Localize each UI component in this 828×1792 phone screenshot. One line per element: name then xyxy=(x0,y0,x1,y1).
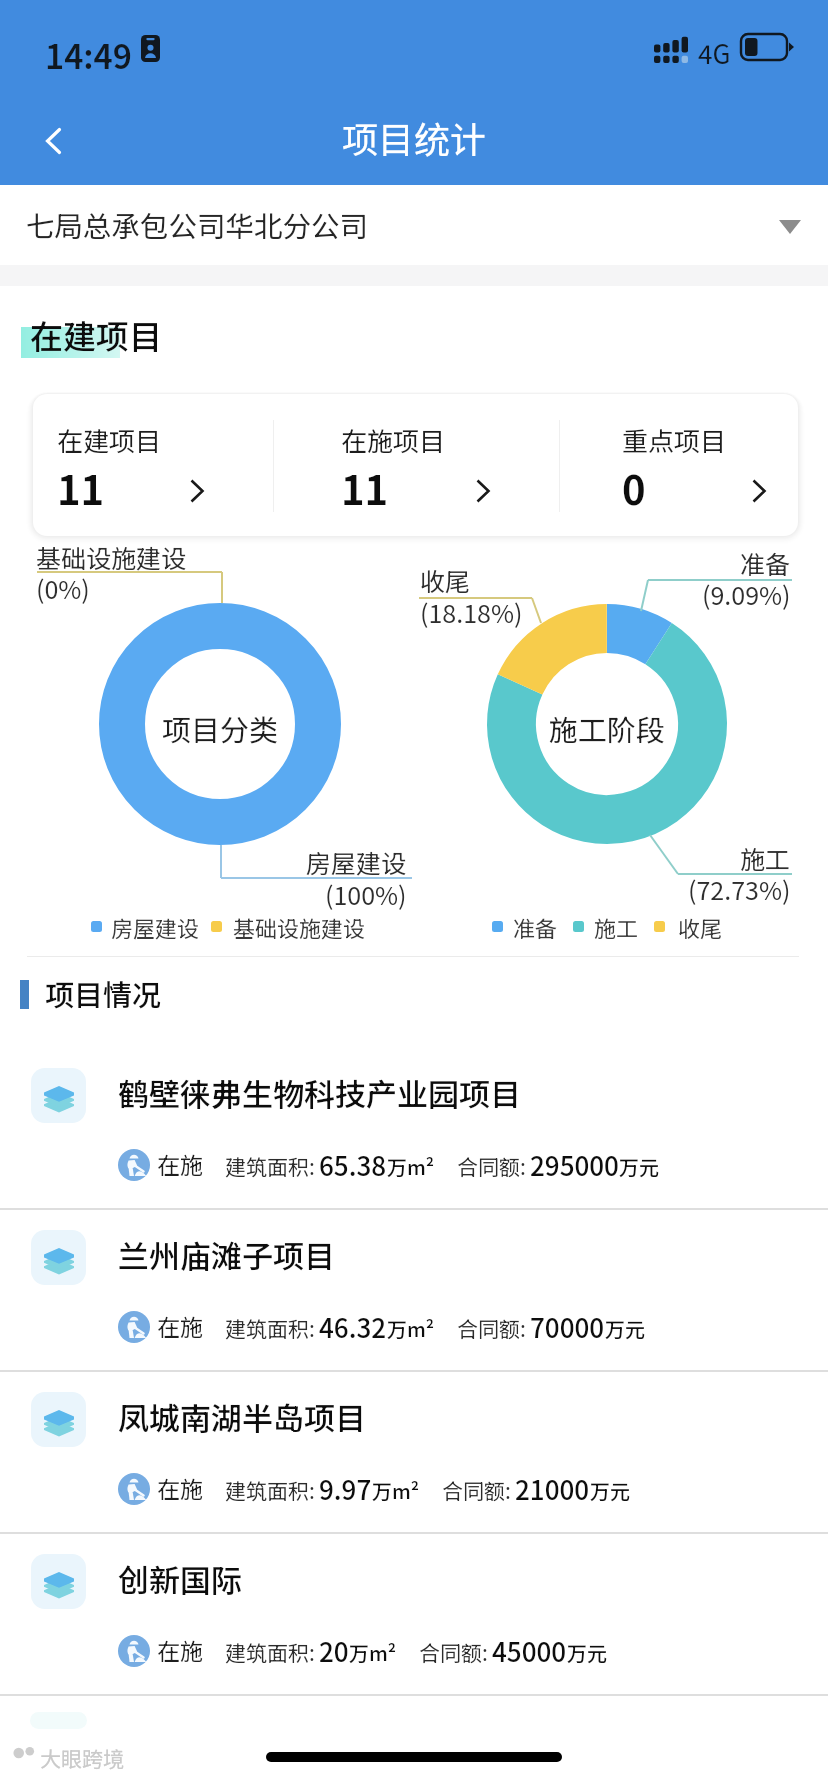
staticText: 14:49 xyxy=(45,31,132,79)
button[interactable]: 在建项目 xyxy=(33,394,273,536)
staticText: 45000 xyxy=(492,1632,567,1670)
staticText: 21000 xyxy=(515,1470,590,1508)
staticText: 合同额: xyxy=(457,1151,526,1181)
staticText: 基础设施建设 xyxy=(233,911,366,943)
staticText: 施工阶段 xyxy=(549,707,666,747)
staticText: 房屋建设 xyxy=(306,844,407,880)
staticText: 295000 xyxy=(530,1146,619,1184)
staticText: 建筑面积: xyxy=(225,1475,315,1505)
button[interactable]: 鹤壁徕弗生物科技产业园项目 xyxy=(0,1048,828,1210)
staticText: 在施 xyxy=(157,1147,203,1180)
button[interactable]: 兰州庙滩子项目 xyxy=(0,1210,828,1372)
staticText: 鹤壁徕弗生物科技产业园项目 xyxy=(118,1070,521,1115)
staticText: 施工 xyxy=(740,840,791,876)
staticText: 4G xyxy=(698,34,731,72)
staticText: (0%) xyxy=(36,570,90,606)
staticText: 准备 xyxy=(740,545,791,581)
staticText: 重点项目 xyxy=(622,421,727,459)
button[interactable]: 创新国际 xyxy=(0,1534,828,1696)
staticText: 七局总承包公司华北分公司 xyxy=(26,204,369,245)
staticText: 在施项目 xyxy=(341,421,446,459)
staticText: 准备 xyxy=(513,911,558,943)
staticText: 房屋建设 xyxy=(111,911,200,943)
staticText: 收尾 xyxy=(420,562,471,598)
staticText: 在建项目 xyxy=(57,421,162,459)
staticText: 大眼跨境 xyxy=(40,1743,124,1773)
staticText: 11 xyxy=(341,459,389,517)
staticText: 万m² xyxy=(387,1152,435,1181)
staticText: 基础设施建设 xyxy=(36,539,187,575)
staticText: 施工 xyxy=(594,911,639,943)
staticText: 46.32 xyxy=(319,1308,387,1346)
staticText: 65.38 xyxy=(319,1146,387,1184)
staticText: 万元 xyxy=(567,1638,607,1667)
staticText: 合同额: xyxy=(457,1313,526,1343)
staticText: 在施 xyxy=(157,1471,203,1504)
button[interactable]: 重点项目 xyxy=(598,394,798,536)
staticText: (18.18%) xyxy=(420,594,523,630)
staticText: 项目统计 xyxy=(342,111,487,163)
staticText: 建筑面积: xyxy=(225,1637,315,1667)
staticText: (100%) xyxy=(325,876,407,912)
staticText: 9.97 xyxy=(319,1470,372,1508)
staticText: 建筑面积: xyxy=(225,1313,315,1343)
staticText: 万m² xyxy=(387,1314,435,1343)
staticText: 合同额: xyxy=(419,1637,488,1667)
staticText: 万m² xyxy=(349,1638,397,1667)
button[interactable]: Back xyxy=(10,93,100,185)
staticText: 万元 xyxy=(605,1314,645,1343)
staticText: 项目情况 xyxy=(45,972,162,1014)
staticText: 在建项目 xyxy=(30,311,162,359)
staticText: 20 xyxy=(319,1632,349,1670)
staticText: 收尾 xyxy=(678,911,723,943)
staticText: 11 xyxy=(57,459,105,517)
staticText: 兰州庙滩子项目 xyxy=(118,1232,335,1277)
staticText: 万元 xyxy=(590,1476,630,1505)
button[interactable]: 凤城南湖半岛项目 xyxy=(0,1372,828,1534)
button[interactable]: 七局总承包公司华北分公司 xyxy=(0,185,828,264)
staticText: 70000 xyxy=(530,1308,605,1346)
staticText: 万元 xyxy=(619,1152,659,1181)
staticText: 创新国际 xyxy=(118,1556,242,1601)
staticText: (9.09%) xyxy=(702,576,791,612)
staticText: 项目分类 xyxy=(162,707,279,747)
staticText: 在施 xyxy=(157,1309,203,1342)
staticText: 建筑面积: xyxy=(225,1151,315,1181)
staticText: 在施 xyxy=(157,1633,203,1666)
staticText: (72.73%) xyxy=(688,871,791,907)
staticText: 凤城南湖半岛项目 xyxy=(118,1394,366,1439)
staticText: 0 xyxy=(622,459,646,517)
button[interactable]: 在施项目 xyxy=(317,394,559,536)
staticText: 合同额: xyxy=(442,1475,511,1505)
staticText: 万m² xyxy=(372,1476,420,1505)
